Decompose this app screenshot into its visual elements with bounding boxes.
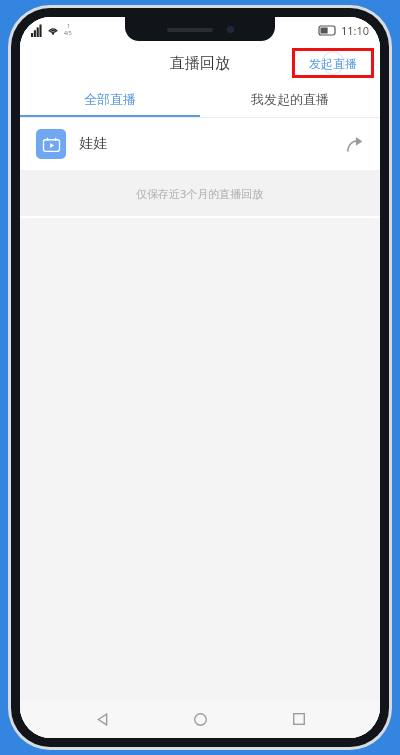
button[interactable]: Back bbox=[85, 702, 119, 736]
staticText: 4/5 bbox=[64, 30, 72, 37]
button[interactable]: 分享 bbox=[336, 126, 372, 162]
button[interactable]: 全部直播 bbox=[20, 83, 200, 115]
staticText: 全部直播 bbox=[84, 91, 136, 107]
staticText: 直播回放 bbox=[170, 54, 230, 73]
staticText: 仅保存近3个月的直播回放 bbox=[136, 186, 264, 201]
staticText: 1 bbox=[67, 23, 70, 30]
staticText: 发起直播 bbox=[309, 56, 357, 71]
button[interactable]: 我发起的直播 bbox=[200, 83, 380, 115]
staticText: 娃娃 bbox=[79, 135, 107, 153]
button[interactable]: Recents bbox=[282, 702, 316, 736]
button[interactable]: 发起直播 bbox=[295, 51, 371, 75]
button[interactable]: 娃娃 bbox=[20, 118, 380, 170]
staticText: 11:10 bbox=[341, 23, 370, 38]
button[interactable]: Home bbox=[183, 702, 217, 736]
staticText: 我发起的直播 bbox=[251, 91, 329, 107]
